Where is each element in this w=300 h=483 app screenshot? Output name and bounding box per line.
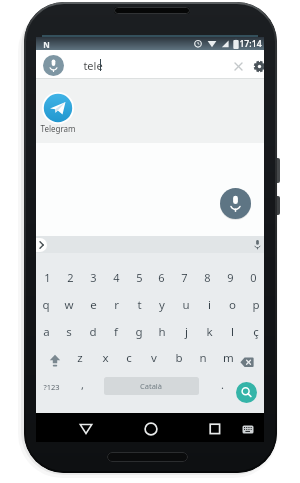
button[interactable] [79,423,93,435]
staticText: o [229,297,236,313]
staticText: i [208,297,211,313]
button[interactable]: k [199,323,219,341]
button[interactable]: . [215,375,229,393]
staticText: a [43,324,50,340]
button[interactable] [48,354,62,367]
staticText: Telegram [40,123,76,134]
staticText: ç [253,324,259,340]
staticText: 0 [250,270,257,285]
staticText: k [206,324,213,340]
button[interactable]: Català [104,377,199,395]
staticText: 6 [158,270,165,285]
button[interactable] [240,357,254,368]
button[interactable]: e [83,296,103,314]
button[interactable]: h [152,323,172,341]
button[interactable]: 4 [106,268,126,286]
staticText: q [42,297,50,313]
button[interactable]: j [176,323,196,341]
button[interactable] [144,422,158,436]
button[interactable] [231,59,246,74]
button[interactable]: r [106,296,126,314]
staticText: 9 [227,270,234,285]
button[interactable]: c [119,349,139,367]
button[interactable]: p [246,296,264,314]
staticText: 5 [136,270,143,285]
button[interactable] [236,382,257,403]
staticText: y [159,297,165,313]
button[interactable]: m [218,349,238,367]
button[interactable]: 3 [83,268,103,286]
button[interactable]: ç [246,323,264,341]
button[interactable]: l [222,323,242,341]
staticText: 1 [44,270,51,285]
staticText: u [182,297,190,313]
button[interactable]: u [176,296,196,314]
button[interactable]: n [193,349,213,367]
staticText: g [135,324,143,340]
staticText: n [199,350,207,366]
staticText: j [185,324,188,340]
staticText: m [223,350,234,366]
staticText: l [231,324,234,340]
button[interactable]: 9 [220,268,240,286]
button[interactable]: 5 [129,268,149,286]
button[interactable]: 8 [197,268,217,286]
button[interactable]: d [83,323,103,341]
button[interactable]: 7 [174,268,194,286]
button[interactable] [36,238,47,252]
button[interactable]: , [75,375,89,393]
button[interactable]: ?123 [37,380,65,394]
staticText: p [252,297,260,313]
button[interactable] [242,425,254,434]
button[interactable]: o [222,296,242,314]
staticText: N [43,39,50,50]
button[interactable]: b [169,349,189,367]
staticText: v [151,350,157,366]
button[interactable]: i [199,296,219,314]
button[interactable]: v [144,349,164,367]
button[interactable]: 6 [151,268,171,286]
staticText: , [81,377,84,392]
button[interactable]: w [59,296,79,314]
staticText: 4 [113,270,120,285]
staticText: tele [83,58,103,73]
button[interactable]: s [59,323,79,341]
staticText: z [77,350,83,366]
button[interactable]: 0 [243,268,263,286]
staticText: 17:14 [239,38,262,50]
staticText: . [221,377,224,392]
button[interactable]: 1 [37,268,57,286]
staticText: t [137,297,142,313]
staticText: 2 [67,270,74,285]
staticText: 8 [204,270,211,285]
button[interactable]: z [70,349,90,367]
staticText: Català [140,381,163,391]
staticText: x [102,350,109,366]
button[interactable] [252,59,264,74]
button[interactable]: q [36,296,56,314]
staticText: e [90,297,97,313]
button[interactable] [42,92,74,124]
staticText: w [64,297,74,313]
staticText: h [158,324,166,340]
button[interactable]: x [95,349,115,367]
button[interactable] [220,188,251,219]
button[interactable] [43,55,64,76]
button[interactable] [252,239,263,250]
button[interactable]: y [152,296,172,314]
button[interactable]: 2 [60,268,80,286]
staticText: 7 [181,270,188,285]
staticText: s [66,324,72,340]
staticText: f [114,324,118,340]
button[interactable]: a [36,323,56,341]
staticText: r [114,297,119,313]
button[interactable]: f [106,323,126,341]
staticText: c [126,350,132,366]
staticText: b [175,350,183,366]
button[interactable] [36,50,264,79]
button[interactable]: g [129,323,149,341]
staticText: d [89,324,97,340]
button[interactable]: t [129,296,149,314]
staticText: ?123 [43,382,60,392]
button[interactable] [209,423,221,435]
